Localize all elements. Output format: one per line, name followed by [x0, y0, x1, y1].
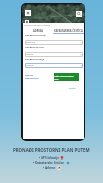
- button[interactable]: KATASTARSKA ČESTICA: [53, 28, 84, 33]
- button[interactable]: Map layers: [25, 10, 31, 16]
- button[interactable]: TRAŽI PROSTORNI PLAN: [54, 73, 79, 81]
- staticText: Općina: [26, 53, 34, 56]
- button[interactable]: ADRESA: [23, 28, 53, 33]
- staticText: ADRESA: [33, 29, 44, 33]
- staticText: PRONAĐI PROSTORNI PLAN PUTEM: [13, 147, 90, 153]
- button[interactable]: NISAM PRONAŠAO ADRESU NA POPISU: [25, 73, 46, 80]
- button[interactable]: Očisti sve: [69, 85, 78, 89]
- staticText: NISAM PRONAŠAO ADRESU NA POPISU: [25, 73, 46, 80]
- staticText: Županija: [26, 41, 35, 44]
- staticText: • GPS lokacije: [39, 156, 59, 160]
- staticText: • Adrese: [43, 166, 56, 170]
- staticText: TRAŽI PROSTORNI PLAN: [52, 74, 74, 80]
- button[interactable]: Županija: [25, 40, 83, 45]
- staticText: Unesite podatke o lokaciji: [24, 24, 51, 27]
- button[interactable]: Općina: [25, 52, 83, 57]
- staticText: KATASTARSKA ČESTICA: [54, 29, 83, 33]
- staticText: ODABERI ŽUPANIJU: [25, 34, 47, 37]
- button[interactable]: My location: [25, 20, 29, 24]
- staticText: ODABERI NASELJE: [25, 58, 45, 61]
- staticText: ODABERI OPĆINU: [25, 46, 45, 49]
- staticText: • Katastarske čestice: [33, 161, 65, 165]
- staticText: Očisti sve: [69, 86, 78, 89]
- button[interactable]: Search: [76, 11, 82, 17]
- button[interactable]: Naselje: [25, 63, 83, 68]
- staticText: Naselje: [26, 64, 34, 67]
